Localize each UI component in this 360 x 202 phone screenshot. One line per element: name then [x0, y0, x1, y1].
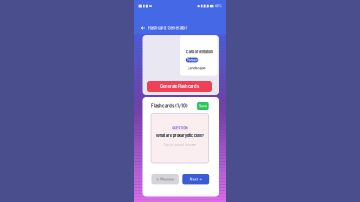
button[interactable]: Save [197, 102, 209, 110]
staticText: Flashcard Generator [147, 25, 187, 30]
button[interactable]: QUESTION [151, 113, 209, 163]
staticText: Next → [190, 177, 202, 181]
button[interactable]: Generate Flashcards [147, 81, 212, 92]
staticText: Tap to reveal answer [163, 143, 196, 147]
button[interactable]: Landscape [186, 66, 206, 70]
staticText: Flashcards (1/10) [151, 103, 188, 109]
button[interactable]: Next → [182, 174, 209, 184]
button[interactable]: Portrait [186, 58, 198, 62]
staticText: 48% [214, 4, 221, 8]
staticText: Portrait [187, 58, 198, 62]
staticText: QUESTION [172, 126, 187, 130]
staticText: Card orientation [186, 49, 213, 54]
staticText: Landscape [188, 66, 206, 70]
staticText: What are prokaryotic cells? [156, 133, 204, 138]
staticText: Generate Flashcards [160, 84, 199, 89]
staticText: ← Previous [156, 177, 174, 181]
button[interactable]: ← Previous [151, 174, 179, 184]
button[interactable]: Back [138, 23, 147, 32]
staticText: Save [199, 104, 207, 108]
